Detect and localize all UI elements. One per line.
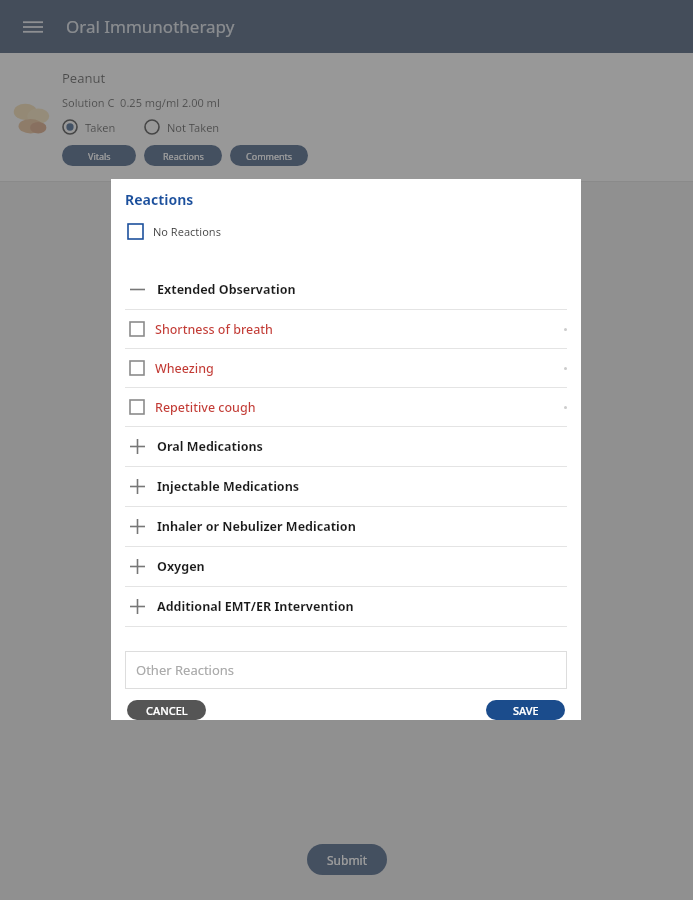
staticText: Not Taken <box>167 120 220 135</box>
staticText: Reactions <box>125 190 194 209</box>
staticText: Reactions <box>163 150 204 162</box>
button[interactable]: Extended Observation <box>111 270 581 309</box>
button[interactable]: Oxygen <box>111 547 581 586</box>
button[interactable]: Inhaler or Nebulizer Medication <box>111 507 581 546</box>
staticText: Comments <box>246 150 293 162</box>
staticText: Additional EMT/ER Intervention <box>157 598 354 615</box>
button[interactable]: Taken <box>62 119 116 135</box>
staticText: Oxygen <box>157 558 205 575</box>
staticText: Shortness of breath <box>155 321 273 338</box>
button[interactable]: Oral Medications <box>111 427 581 466</box>
button[interactable]: Repetitive cough <box>111 388 581 426</box>
staticText: Solution C 0.25 mg/ml 2.00 ml <box>62 95 220 110</box>
staticText: Injectable Medications <box>157 478 300 495</box>
button[interactable]: Not Taken <box>144 119 220 135</box>
staticText: Extended Observation <box>157 281 296 298</box>
button[interactable]: Injectable Medications <box>111 467 581 506</box>
staticText: Submit <box>327 852 368 868</box>
staticText: Peanut <box>62 69 106 87</box>
staticText: Repetitive cough <box>155 399 256 416</box>
button[interactable]: CANCEL <box>127 700 206 720</box>
button[interactable]: Other Reactions <box>125 651 567 689</box>
button[interactable]: Reactions <box>144 145 222 166</box>
staticText: CANCEL <box>146 703 188 718</box>
staticText: No Reactions <box>153 224 221 239</box>
button[interactable]: Comments <box>230 145 308 166</box>
button[interactable]: Submit <box>307 844 387 875</box>
staticText: Inhaler or Nebulizer Medication <box>157 518 356 535</box>
button[interactable]: No Reactions <box>111 218 581 244</box>
button[interactable]: Wheezing <box>111 349 581 387</box>
staticText: Vitals <box>88 150 111 162</box>
button[interactable]: Menu <box>18 12 48 42</box>
staticText: Taken <box>85 120 116 135</box>
staticText: SAVE <box>513 703 539 718</box>
button[interactable]: SAVE <box>486 700 565 720</box>
staticText: Wheezing <box>155 360 214 377</box>
button[interactable]: Vitals <box>62 145 136 166</box>
button[interactable]: Shortness of breath <box>111 310 581 348</box>
staticText: Oral Medications <box>157 438 263 455</box>
staticText: Oral Immunotherapy <box>66 15 235 38</box>
staticText: Other Reactions <box>136 661 235 679</box>
button[interactable]: Additional EMT/ER Intervention <box>111 587 581 626</box>
